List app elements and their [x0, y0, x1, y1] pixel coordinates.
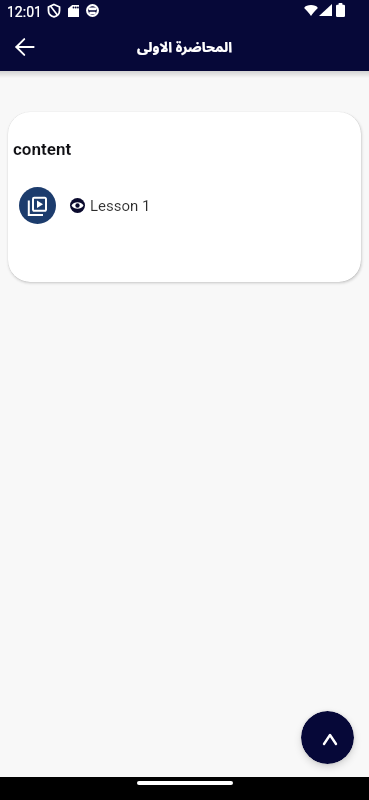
button[interactable]: Scroll to top [301, 711, 354, 764]
staticText: 12:01 [7, 4, 42, 20]
staticText: Lesson 1 [90, 197, 151, 215]
button[interactable]: Back [6, 28, 44, 66]
button[interactable]: Lesson 1 [8, 181, 361, 230]
staticText: content [13, 139, 72, 159]
staticText: المحاضرة الاولى [137, 33, 232, 63]
